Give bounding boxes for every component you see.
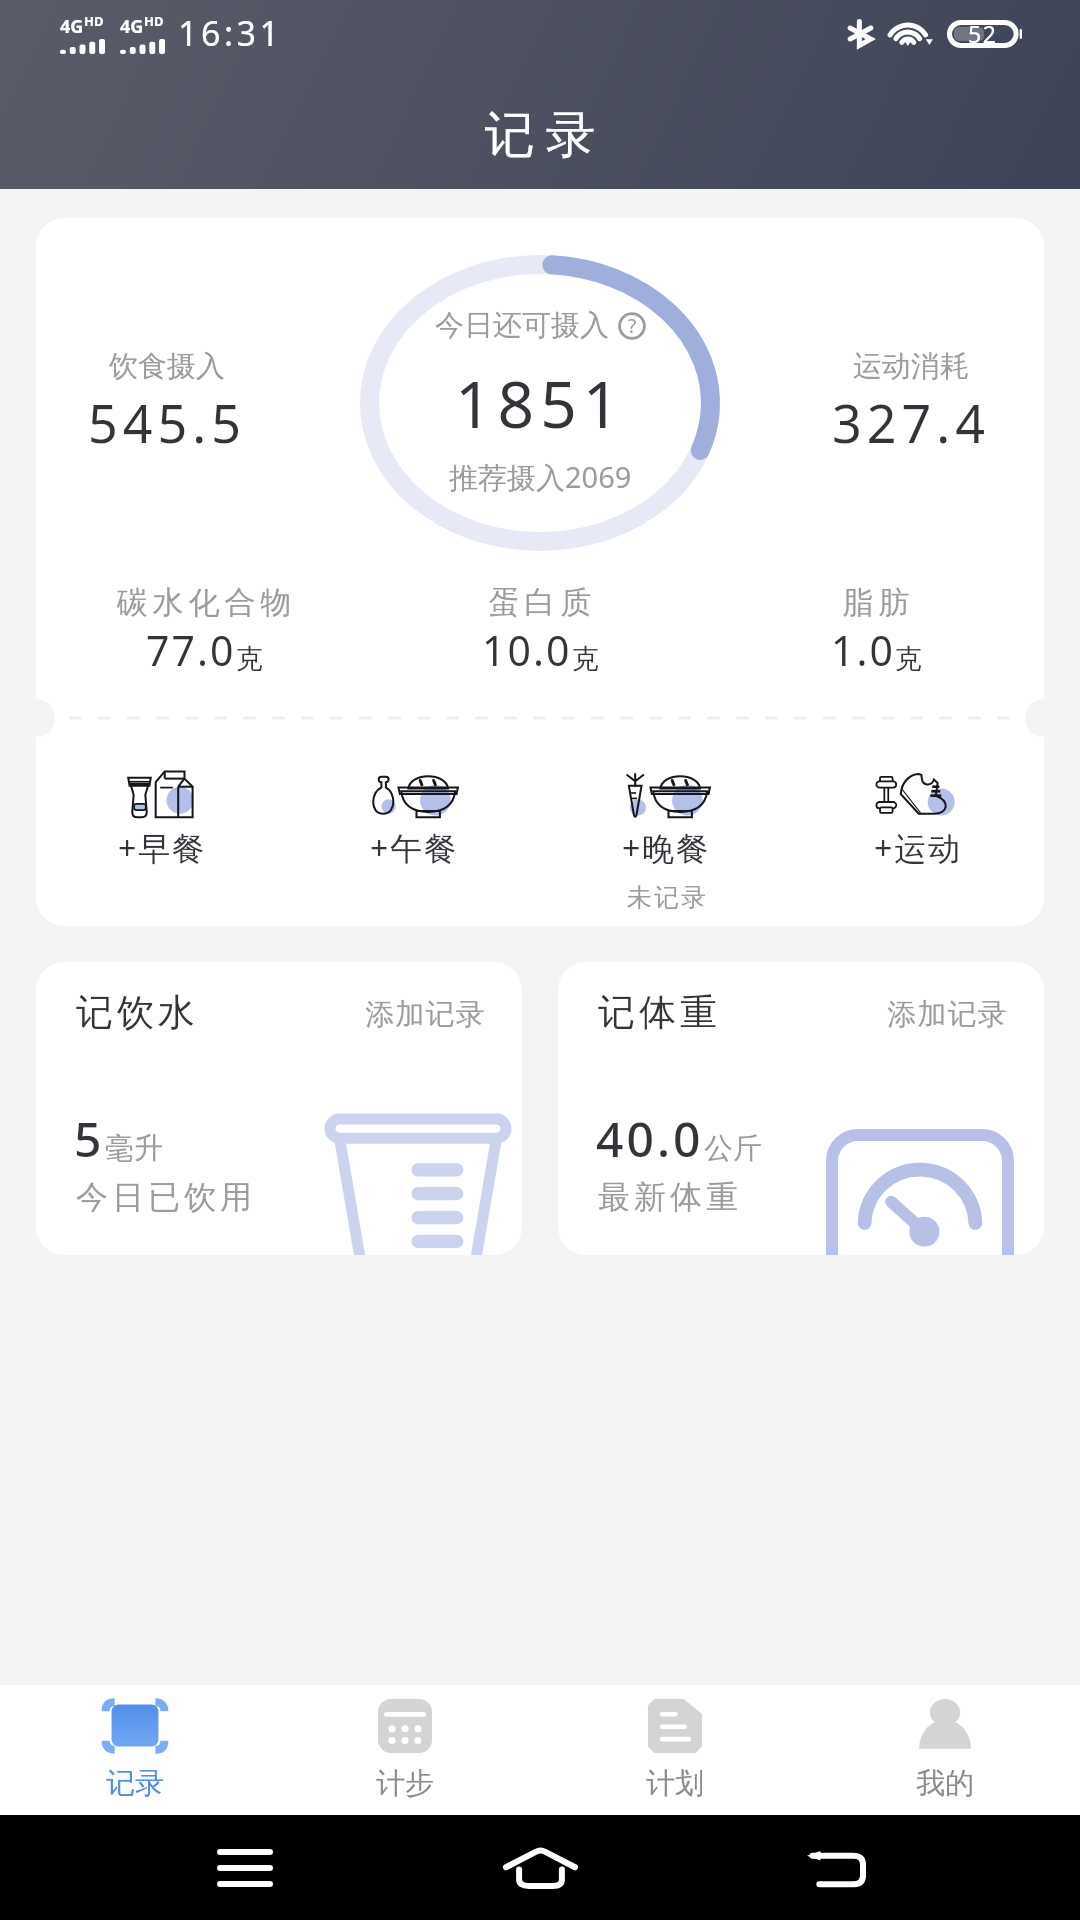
staticText: +午餐 [370,826,459,870]
staticText: +晚餐 [622,826,711,870]
staticText: 10.0 [482,622,572,678]
staticText: 计步 [376,1765,434,1802]
staticText: 记饮水 [74,989,197,1036]
staticText: 记体重 [596,989,719,1036]
staticText: 计划 [646,1765,704,1802]
staticText: 克 [236,642,263,676]
staticText: HD [144,12,164,30]
staticText: 蛋白质 [486,583,594,622]
staticText: 40.0 [596,1106,704,1171]
staticText: 饮食摄入 [109,348,225,385]
button[interactable]: +午餐 [288,766,540,870]
button[interactable]: Back [785,1815,885,1920]
button[interactable]: 记录 [0,1685,270,1815]
staticText: 运动消耗 [853,348,969,385]
staticText: 77.0 [146,622,236,678]
staticText: 1851 [455,360,626,447]
staticText: 克 [572,642,599,676]
staticText: 未记录 [626,882,707,913]
staticText: 添加记录 [365,996,485,1033]
button[interactable]: +晚餐 [540,766,792,913]
staticText: ? [628,313,637,339]
staticText: 我的 [916,1765,974,1802]
button[interactable]: 计步 [270,1685,540,1815]
staticText: 1.0 [831,622,895,678]
staticText: 毫升 [105,1130,163,1167]
button[interactable]: 计划 [540,1685,810,1815]
button[interactable]: Menu [195,1815,295,1920]
staticText: 推荐摄入2069 [449,457,632,497]
staticText: 52 [968,18,998,49]
staticText: 公斤 [704,1130,762,1167]
button[interactable]: 记饮水 [36,962,522,1255]
button[interactable]: +运动 [792,766,1044,870]
staticText: 4G [60,14,84,39]
staticText: 今日还可摄入 [435,307,609,344]
staticText: 记录 [106,1765,164,1802]
staticText: 脂肪 [840,583,912,622]
staticText: 记录 [479,104,601,167]
staticText: HD [84,12,104,30]
staticText: 碳水化合物 [114,583,294,622]
staticText: +早餐 [118,826,207,870]
staticText: 添加记录 [887,996,1007,1033]
button[interactable]: Home [490,1815,590,1920]
staticText: 327.4 [832,387,990,458]
staticText: +运动 [874,826,963,870]
button[interactable]: 记体重 [558,962,1044,1255]
staticText: 5 [74,1106,105,1171]
staticText: 545.5 [88,387,246,458]
staticText: 4G [120,14,144,39]
button[interactable]: 我的 [810,1685,1080,1815]
button[interactable]: +早餐 [36,766,288,870]
staticText: 克 [895,642,922,676]
staticText: 今日已饮用 [74,1177,254,1217]
staticText: 16:31 [178,10,283,56]
staticText: 最新体重 [596,1177,740,1217]
